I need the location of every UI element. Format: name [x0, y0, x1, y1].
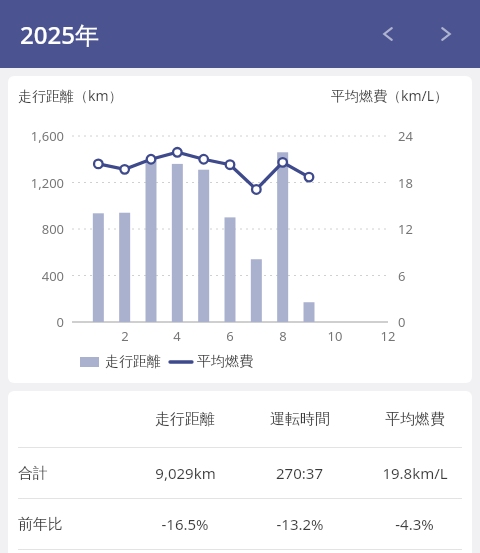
- staticText: 合計: [18, 464, 48, 483]
- button[interactable]: 次の年: [426, 14, 466, 54]
- staticText: 12: [398, 220, 438, 238]
- staticText: 19.8km/L: [382, 463, 448, 483]
- staticText: 9,029km: [155, 463, 216, 483]
- staticText: -13.2%: [276, 514, 324, 534]
- staticText: 1,600: [6, 127, 64, 145]
- button[interactable]: 前年比: [8, 499, 472, 549]
- button[interactable]: 合計: [8, 448, 472, 498]
- staticText: -16.5%: [161, 514, 209, 534]
- staticText: 平均燃費: [385, 410, 445, 429]
- staticText: 2025年: [20, 18, 99, 51]
- staticText: 400: [6, 267, 64, 285]
- staticText: 平均燃費（km/L）: [331, 86, 449, 105]
- button[interactable]: 前の年: [368, 14, 408, 54]
- staticText: 平均燃費: [197, 353, 253, 371]
- staticText: 走行距離: [105, 353, 161, 371]
- staticText: 0: [6, 313, 64, 331]
- staticText: 走行距離: [155, 410, 215, 429]
- staticText: 24: [398, 127, 438, 145]
- staticText: 12: [374, 327, 402, 345]
- staticText: 270:37: [276, 463, 323, 483]
- staticText: 前年比: [18, 515, 63, 534]
- staticText: 4: [163, 327, 191, 345]
- staticText: -4.3%: [395, 514, 434, 534]
- staticText: 6: [216, 327, 244, 345]
- staticText: 18: [398, 174, 438, 192]
- staticText: 運転時間: [270, 410, 330, 429]
- staticText: 0: [398, 313, 438, 331]
- staticText: 走行距離（km）: [18, 86, 123, 105]
- staticText: 2: [111, 327, 139, 345]
- staticText: 1,200: [6, 174, 64, 192]
- staticText: 800: [6, 220, 64, 238]
- staticText: 8: [269, 327, 297, 345]
- staticText: 6: [398, 267, 438, 285]
- staticText: 10: [321, 327, 349, 345]
